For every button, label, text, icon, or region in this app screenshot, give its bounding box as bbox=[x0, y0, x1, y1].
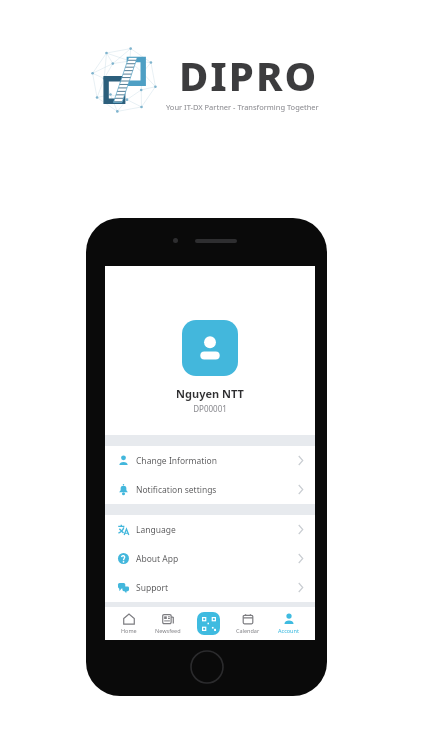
staticText: Home bbox=[121, 627, 137, 634]
staticText: Change Information bbox=[136, 455, 217, 467]
button[interactable]: Language bbox=[105, 515, 315, 544]
staticText: Language bbox=[136, 524, 176, 536]
staticText: DIPRO bbox=[179, 48, 319, 102]
staticText: Calendar bbox=[236, 627, 260, 634]
button[interactable]: Account bbox=[276, 613, 301, 634]
button[interactable]: Newsfeed bbox=[153, 613, 183, 634]
button[interactable]: Scan QR code bbox=[197, 612, 220, 635]
button[interactable]: Profile avatar bbox=[182, 320, 238, 376]
staticText: Account bbox=[278, 627, 299, 634]
button[interactable]: Calendar bbox=[234, 613, 262, 634]
staticText: Support bbox=[136, 582, 169, 594]
button[interactable]: Notification settings bbox=[105, 475, 315, 504]
staticText: Your IT-DX Partner - Transforming Togeth… bbox=[166, 102, 319, 112]
button[interactable]: Support bbox=[105, 573, 315, 602]
staticText: Newsfeed bbox=[155, 627, 181, 634]
staticText: DP00001 bbox=[193, 403, 227, 414]
button[interactable]: Change Information bbox=[105, 446, 315, 475]
staticText: Nguyen NTT bbox=[176, 386, 244, 401]
staticText: About App bbox=[136, 553, 179, 565]
staticText: Notification settings bbox=[136, 484, 217, 496]
button[interactable]: Home bbox=[119, 613, 139, 634]
button[interactable]: About App bbox=[105, 544, 315, 573]
